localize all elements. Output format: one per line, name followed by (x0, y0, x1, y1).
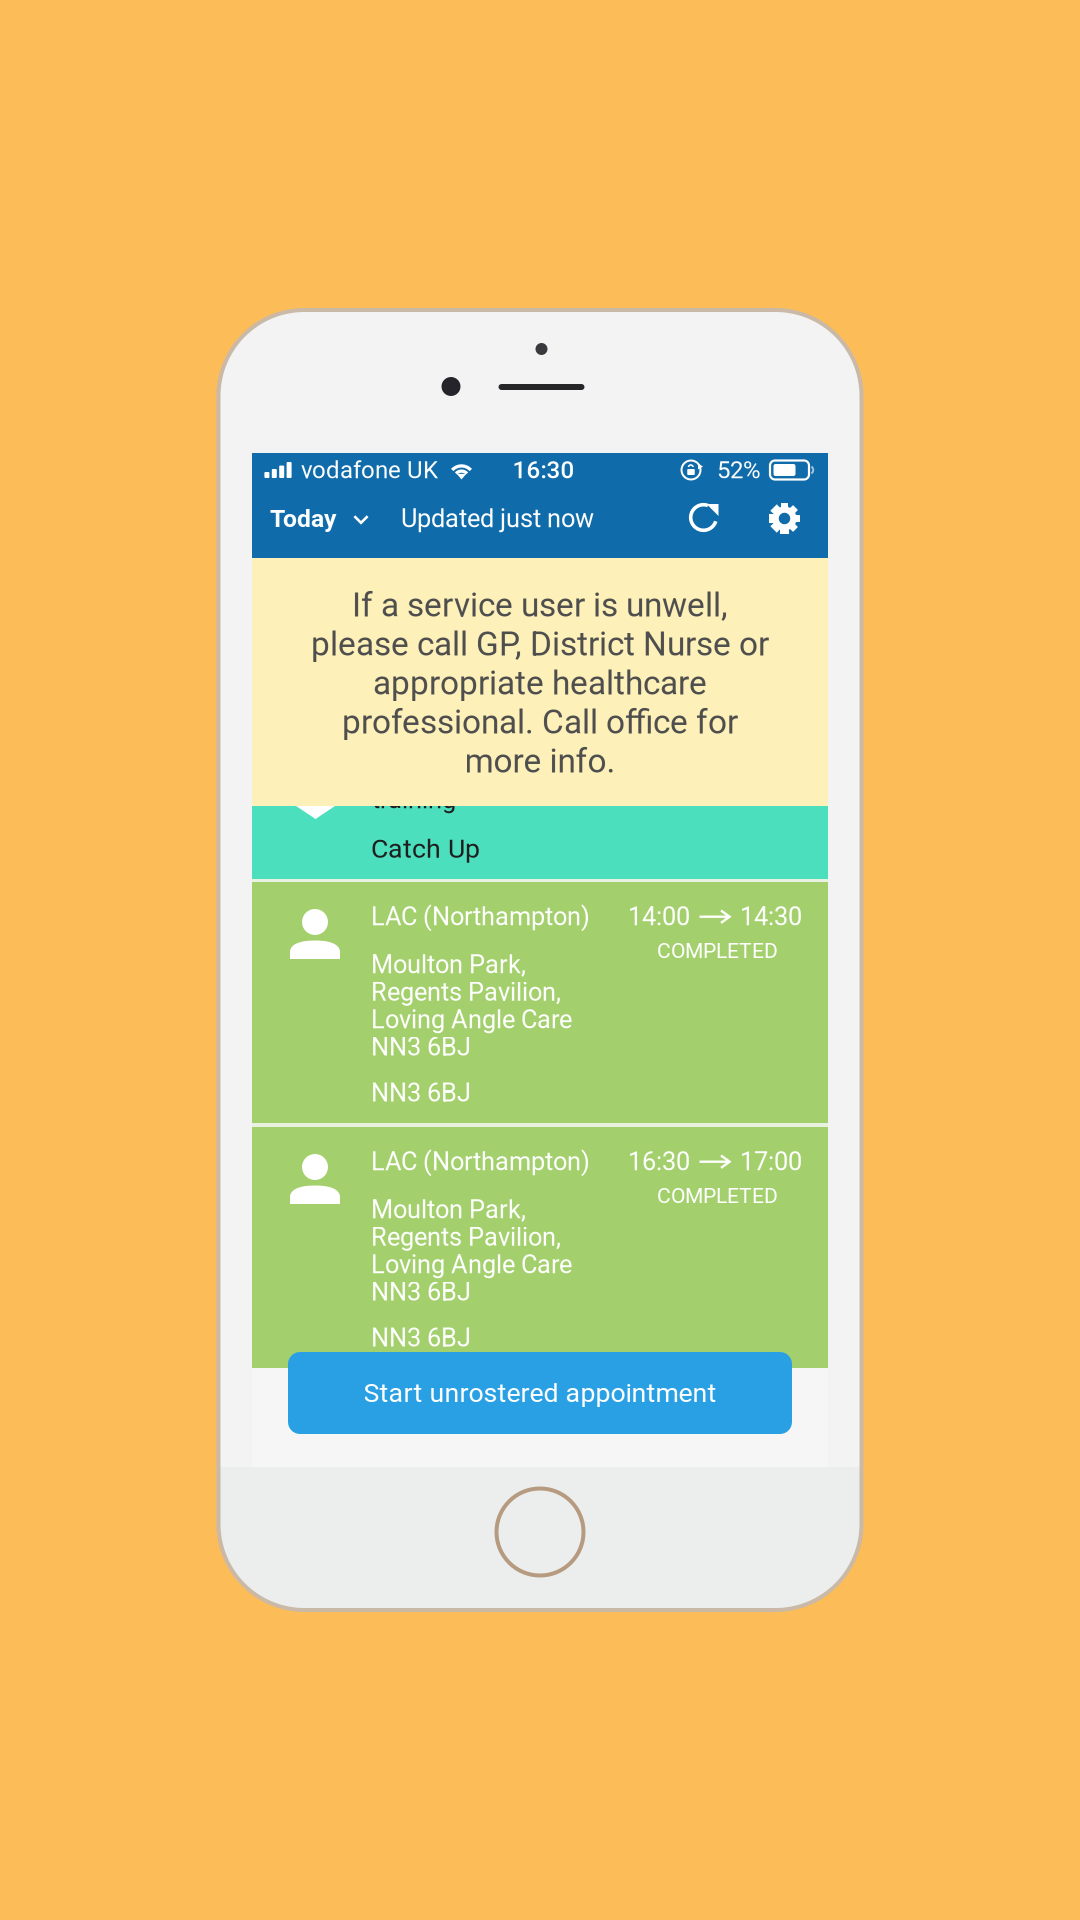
button[interactable]: LAC (Northampton) (252, 1127, 828, 1368)
staticText: LAC (Northampton) (371, 902, 590, 932)
staticText: Updated just now (401, 504, 594, 533)
staticText: COMPLETED (657, 1183, 778, 1208)
button[interactable]: Today (270, 494, 369, 543)
button[interactable]: Refresh (689, 502, 723, 535)
staticText: If a service user is unwell, (352, 585, 728, 625)
staticText: appropriate healthcare (373, 663, 707, 703)
staticText: Start unrostered appointment (363, 1377, 716, 1409)
staticText: vodafone UK (301, 456, 438, 484)
staticText: 16:30 (628, 1147, 690, 1177)
staticText: 52% (717, 456, 761, 484)
staticText: more info. (464, 741, 615, 781)
staticText: 17:00 (740, 1147, 802, 1177)
staticText: COMPLETED (657, 938, 778, 963)
staticText: 14:30 (740, 902, 802, 932)
staticText: professional. Call office for (342, 702, 738, 742)
staticText: Loving Angle Care (371, 1005, 572, 1034)
staticText: NN3 6BJ (371, 1323, 471, 1353)
staticText: Today (270, 504, 336, 533)
button[interactable]: Start unrostered appointment (288, 1352, 792, 1434)
staticText: Catch Up (371, 833, 480, 864)
staticText: NN3 6BJ (371, 1032, 471, 1062)
staticText: 16:30 (512, 456, 574, 484)
button[interactable]: LAC (Northampton) (252, 882, 828, 1123)
staticText: Loving Angle Care (371, 1250, 572, 1279)
staticText: Regents Pavilion, (371, 977, 561, 1007)
button[interactable]: Settings (723, 503, 800, 534)
button[interactable]: training (252, 749, 828, 879)
staticText: LAC (Northampton) (371, 1147, 590, 1177)
staticText: training (372, 785, 456, 815)
staticText: Regents Pavilion, (371, 1222, 561, 1252)
staticText: NN3 6BJ (371, 1078, 471, 1108)
staticText: Moulton Park, (371, 950, 526, 980)
staticText: please call GP, District Nurse or (311, 624, 769, 664)
staticText: Moulton Park, (371, 1195, 526, 1225)
staticText: NN3 6BJ (371, 1277, 471, 1307)
staticText: 14:00 (628, 902, 690, 932)
